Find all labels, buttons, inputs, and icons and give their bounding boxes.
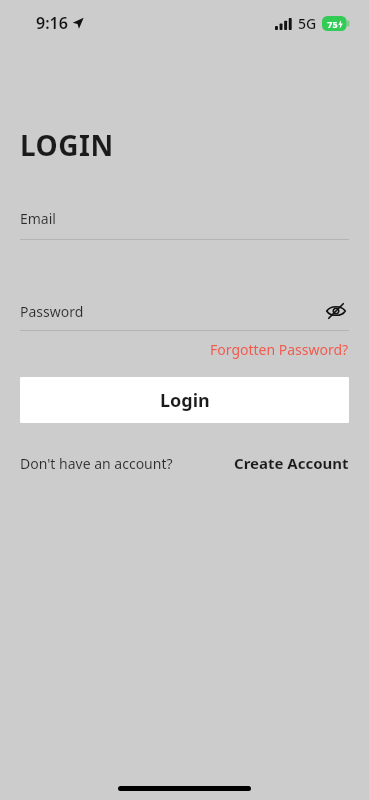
staticText: Email bbox=[20, 209, 56, 228]
button[interactable]: Forgotten Password? bbox=[210, 338, 349, 361]
staticText: Don't have an account? bbox=[20, 454, 173, 473]
staticText: LOGIN bbox=[20, 126, 114, 164]
button[interactable]: Create Account bbox=[234, 451, 349, 475]
button[interactable]: Login bbox=[20, 377, 349, 423]
button[interactable]: Email bbox=[20, 209, 349, 240]
staticText: 75 bbox=[327, 18, 338, 30]
staticText: 9:16 bbox=[36, 12, 68, 34]
staticText: 5G bbox=[298, 14, 317, 33]
button[interactable]: Password bbox=[20, 302, 323, 321]
staticText: Login bbox=[160, 388, 210, 413]
button[interactable]: Show password bbox=[323, 298, 349, 324]
